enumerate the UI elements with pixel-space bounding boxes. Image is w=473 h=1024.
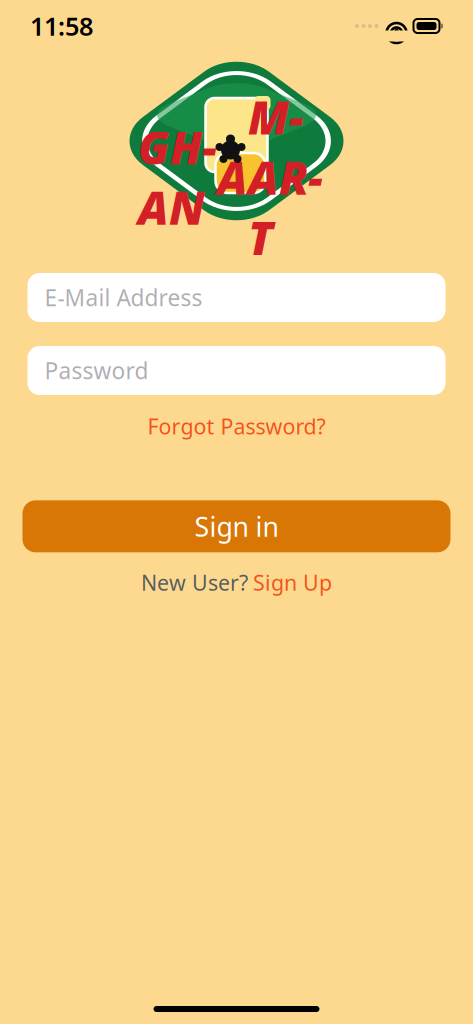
staticText: 11:58 — [30, 9, 93, 43]
button[interactable]: Sign in — [22, 500, 450, 552]
button[interactable]: Forgot Password? — [139, 408, 333, 444]
staticText: New User? — [141, 568, 248, 597]
staticText: A — [217, 147, 248, 207]
button[interactable]: Sign Up — [253, 568, 332, 597]
staticText: GHAN — [138, 117, 217, 237]
button[interactable]: Password — [27, 346, 445, 395]
staticText: MART — [248, 87, 323, 267]
button[interactable]: E-Mail Address — [27, 273, 445, 322]
staticText: Sign in — [194, 509, 278, 544]
staticText: Forgot Password? — [147, 412, 325, 440]
staticText: Password — [44, 355, 148, 385]
staticText: E-Mail Address — [44, 282, 202, 312]
staticText: Sign Up — [253, 568, 332, 597]
